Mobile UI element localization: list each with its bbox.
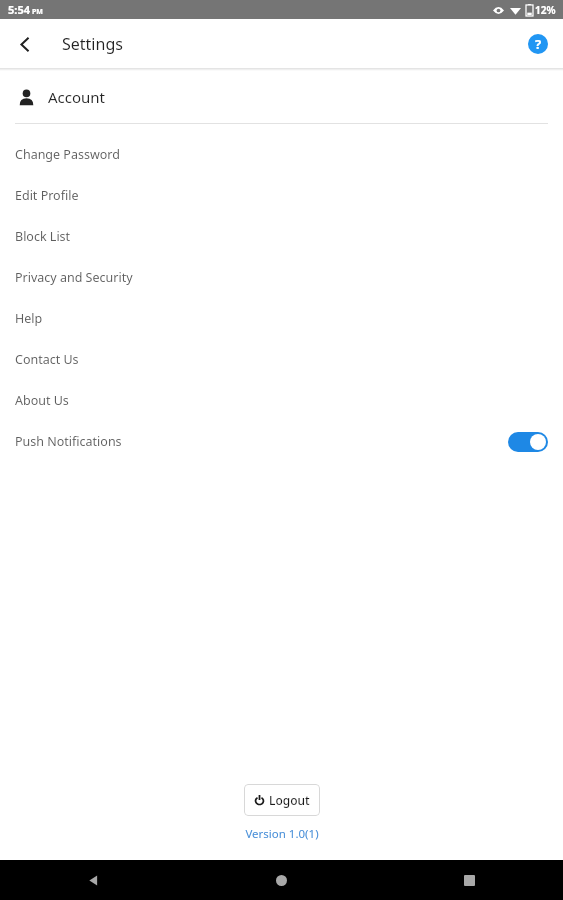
staticText: Settings	[62, 33, 123, 55]
staticText: ?	[535, 35, 542, 53]
button[interactable]: Account	[0, 71, 563, 123]
staticText: Help	[15, 310, 43, 327]
staticText: Logout	[269, 792, 310, 808]
button[interactable]: Help	[0, 298, 563, 339]
button[interactable]: Back	[0, 860, 187, 900]
staticText: Change Password	[15, 146, 120, 163]
staticText: Privacy and Security	[15, 269, 133, 286]
button[interactable]: Block List	[0, 216, 563, 257]
button[interactable]: Change Password	[0, 134, 563, 175]
button[interactable]: Privacy and Security	[0, 257, 563, 298]
button[interactable]: Version 1.0(1)	[245, 826, 319, 842]
button[interactable]: About Us	[0, 380, 563, 421]
staticText: Block List	[15, 228, 71, 245]
staticText: 5:54	[8, 2, 30, 17]
staticText: Contact Us	[15, 351, 79, 368]
staticText: Push Notifications	[15, 433, 122, 450]
button[interactable]: Home	[187, 860, 375, 900]
staticText: Edit Profile	[15, 187, 79, 204]
staticText: Version 1.0(1)	[245, 826, 319, 842]
button[interactable]: Push notifications toggle	[508, 431, 548, 453]
button[interactable]: Edit Profile	[0, 175, 563, 216]
button[interactable]: Contact Us	[0, 339, 563, 380]
button[interactable]: Logout	[244, 784, 320, 816]
staticText: Account	[48, 87, 106, 107]
staticText: PM	[32, 7, 43, 17]
staticText: About Us	[15, 392, 69, 409]
button[interactable]: Recents	[375, 860, 563, 900]
staticText: 12%	[535, 3, 556, 17]
button[interactable]: Back	[6, 25, 44, 63]
button[interactable]: Help	[521, 27, 555, 61]
button[interactable]: Push Notifications	[0, 421, 563, 462]
